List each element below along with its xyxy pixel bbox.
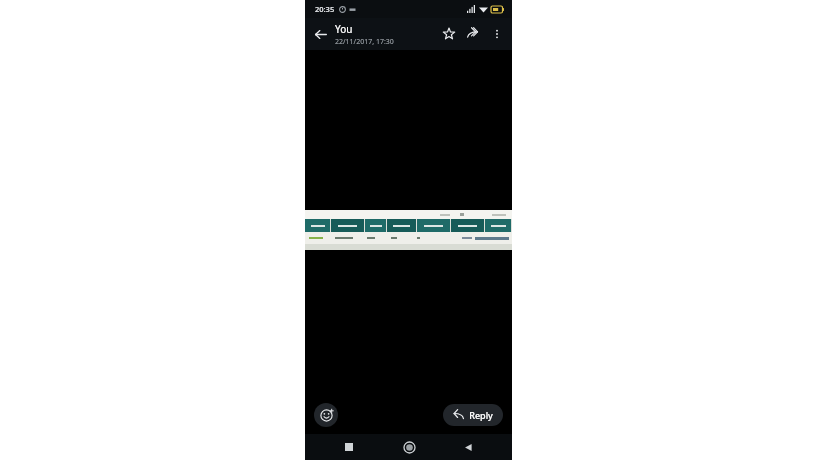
staticText: 20:35 bbox=[315, 4, 335, 14]
staticText: You bbox=[335, 22, 353, 36]
button[interactable]: Forward bbox=[461, 22, 485, 46]
button[interactable]: Back bbox=[453, 434, 483, 460]
button[interactable] bbox=[305, 210, 512, 250]
staticText: Reply bbox=[469, 409, 493, 421]
button[interactable]: More options bbox=[485, 22, 509, 46]
button[interactable]: Home bbox=[394, 434, 424, 460]
button[interactable]: Reply bbox=[443, 404, 503, 426]
button[interactable]: Recent apps bbox=[334, 434, 364, 460]
button[interactable]: Back bbox=[309, 23, 331, 45]
button[interactable]: Star bbox=[437, 22, 461, 46]
button[interactable]: Add reaction bbox=[314, 403, 338, 427]
staticText: 22/11/2017, 17:30 bbox=[335, 37, 394, 47]
